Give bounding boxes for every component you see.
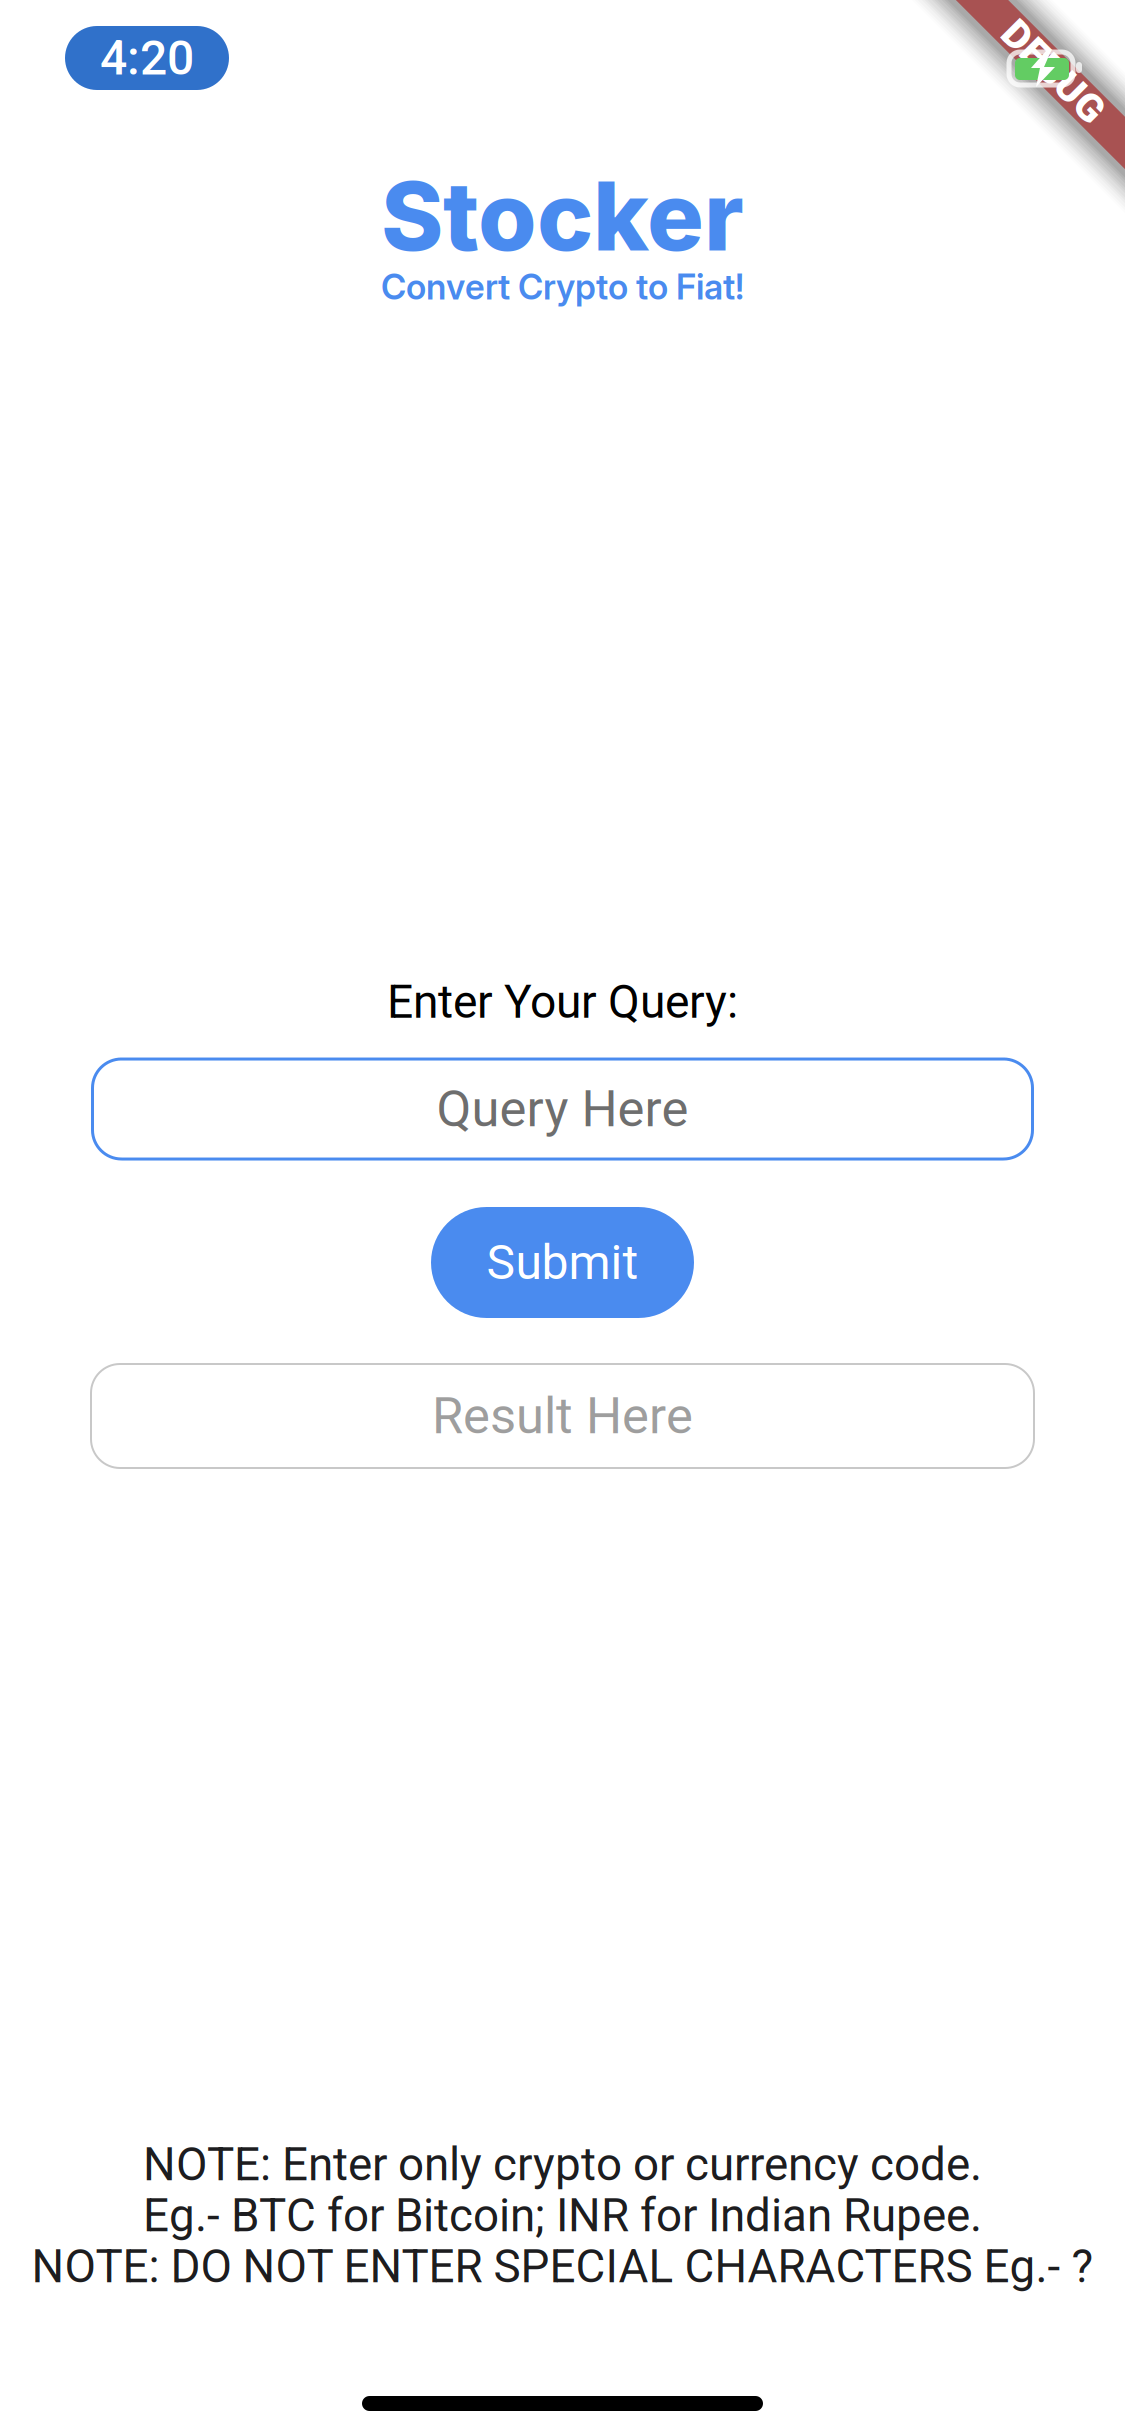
staticText: Stocker bbox=[381, 159, 744, 273]
staticText: Query Here bbox=[436, 1079, 688, 1139]
button[interactable]: Submit bbox=[431, 1207, 694, 1318]
staticText: Result Here bbox=[432, 1386, 693, 1446]
staticText: Enter Your Query: bbox=[387, 975, 738, 1029]
staticText: 4:20 bbox=[100, 30, 194, 86]
staticText: Eg.- BTC for Bitcoin; INR for Indian Rup… bbox=[143, 2189, 982, 2242]
staticText: NOTE: Enter only crypto or currency code… bbox=[143, 2138, 982, 2191]
staticText: Submit bbox=[486, 1234, 638, 1291]
staticText: Convert Crypto to Fiat! bbox=[381, 266, 744, 308]
staticText: NOTE: DO NOT ENTER SPECIAL CHARACTERS Eg… bbox=[31, 2240, 1093, 2293]
staticText: DEBUG bbox=[989, 48, 1117, 95]
